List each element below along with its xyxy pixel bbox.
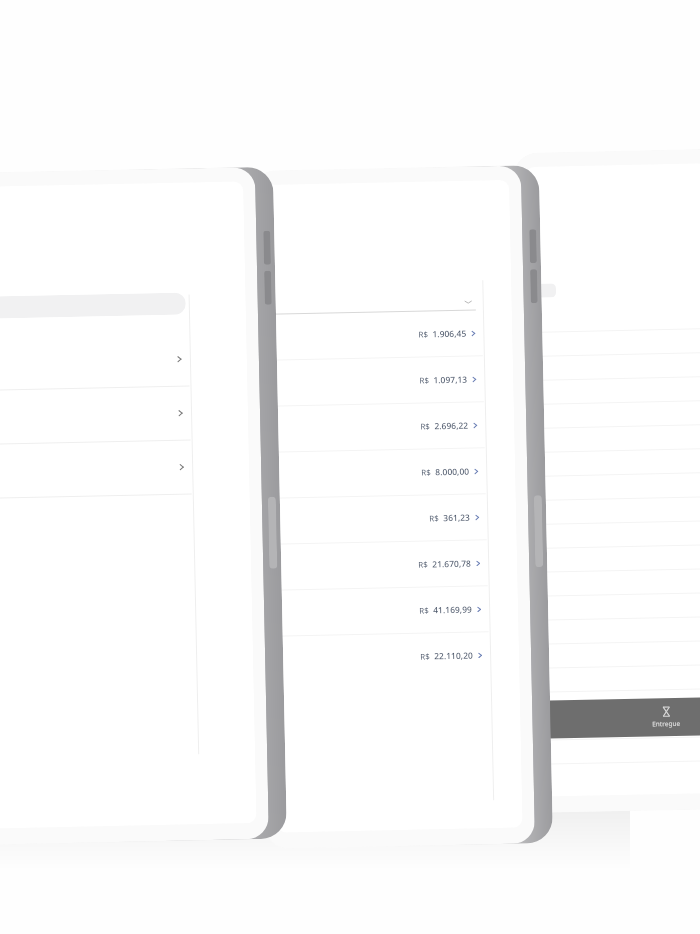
button[interactable]: Protocolo [529,327,700,356]
button[interactable]: Protocolo [530,399,700,428]
staticText: 1.906,45 [432,328,466,340]
button[interactable]: Protocolo [536,663,700,692]
button[interactable]: R$ [271,540,518,590]
button[interactable]: R$ [273,632,520,682]
button[interactable]: Protocolo [536,687,700,716]
button[interactable]: Protocolo [528,303,700,332]
staticText: R$ [418,558,428,570]
button[interactable]: R$ [270,494,517,544]
button[interactable]: Protocolo [529,351,700,380]
staticText: R$ [418,328,428,340]
staticText: R$ [420,420,430,432]
staticText: 21.670,78 [432,558,471,570]
staticText: 41.169,99 [433,604,472,616]
button[interactable]: R$ [266,310,513,360]
staticText: 361,23 [443,512,470,524]
button[interactable]: R$ [268,402,515,452]
staticText: R$ [420,650,430,662]
button[interactable]: Protocolo [532,471,700,500]
button[interactable]: Protocolo [537,735,700,764]
staticText: 8.000,00 [435,466,469,478]
button[interactable]: Protocolo [534,591,700,620]
button[interactable]: Entregue [537,695,700,739]
staticText: 2.696,22 [434,420,468,432]
staticText: R$ [421,466,431,478]
button[interactable]: Protocolo [533,519,700,548]
button[interactable]: Protocolo [531,447,700,476]
button[interactable]: 3 [0,331,247,394]
button[interactable]: Protocolo [534,567,700,596]
staticText: R$ [429,512,439,523]
button[interactable]: Protocolo [530,375,700,404]
button[interactable]: R$ [269,448,516,498]
button[interactable]: R$ [267,356,514,406]
button[interactable]: R$ [272,586,519,636]
staticText: 22.110,20 [434,649,473,662]
staticText: R$ [419,604,429,616]
staticText: Entregue [652,719,680,728]
staticText: R$ [419,374,429,386]
button[interactable] [0,292,186,323]
button[interactable]: Protocolo [533,543,700,572]
button[interactable]: Protocolo [535,639,700,668]
staticText: 1.097,13 [433,374,467,386]
button[interactable]: 3 [0,385,249,448]
button[interactable] [530,283,556,298]
button[interactable]: Protocolo [537,711,700,740]
button[interactable]: Protocolo [535,615,700,644]
button[interactable]: Protocolo [531,423,700,452]
button[interactable]: Protocolo [532,495,700,524]
button[interactable]: 3 [0,439,250,502]
